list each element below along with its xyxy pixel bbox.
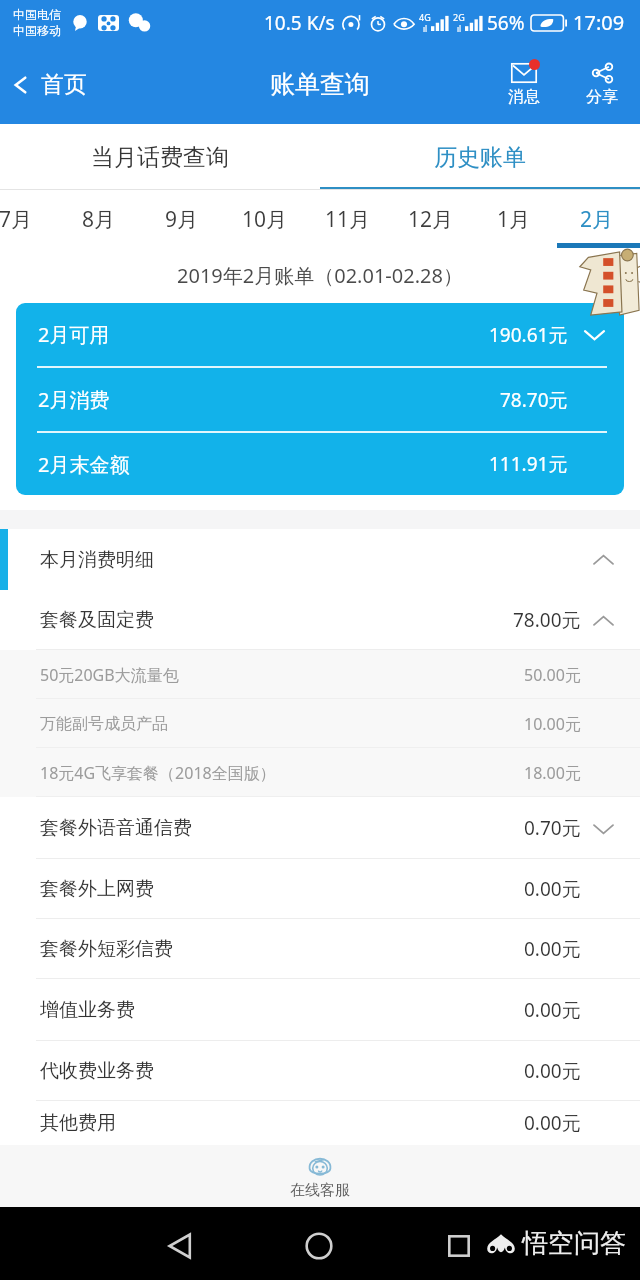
staticText: 套餐外语音通信费 bbox=[40, 816, 192, 840]
staticText: 2月 bbox=[580, 205, 614, 234]
button[interactable]: 增值业务费 bbox=[0, 979, 640, 1041]
button[interactable]: 消息 bbox=[505, 60, 543, 109]
button[interactable]: 历史账单 bbox=[320, 124, 640, 190]
staticText: 0.00元 bbox=[524, 1058, 581, 1084]
button[interactable]: 2月可用 bbox=[16, 303, 624, 366]
staticText: 当月话费查询 bbox=[91, 143, 229, 172]
staticText: 2月消费 bbox=[38, 386, 110, 413]
button[interactable]: 套餐外短彩信费 bbox=[0, 919, 640, 979]
staticText: 10.00元 bbox=[524, 713, 581, 735]
staticText: 2月可用 bbox=[38, 321, 110, 348]
staticText: 2019年2月账单（02.01-02.28） bbox=[177, 262, 463, 289]
staticText: 10月 bbox=[242, 205, 288, 234]
staticText: 2月末金额 bbox=[38, 451, 130, 478]
button[interactable]: 首页 bbox=[0, 62, 97, 107]
staticText: 11月 bbox=[325, 205, 371, 234]
staticText: 在线客服 bbox=[290, 1181, 350, 1200]
staticText: 万能副号成员产品 bbox=[40, 714, 168, 734]
button[interactable]: 万能副号成员产品 bbox=[0, 699, 640, 748]
staticText: 0.00元 bbox=[524, 936, 581, 962]
staticText: 190.61元 bbox=[489, 322, 568, 348]
staticText: 0.00元 bbox=[524, 1110, 581, 1136]
staticText: 4G bbox=[419, 11, 431, 23]
staticText: 账单查询 bbox=[270, 69, 370, 100]
staticText: 78.70元 bbox=[500, 387, 568, 413]
staticText: 0.00元 bbox=[524, 876, 581, 902]
staticText: 中国电信 bbox=[13, 7, 61, 22]
button[interactable]: 本月消费明细 bbox=[0, 529, 640, 590]
staticText: 8月 bbox=[82, 205, 116, 234]
staticText: ıl bbox=[457, 23, 462, 34]
staticText: 套餐外上网费 bbox=[40, 877, 154, 901]
staticText: 本月消费明细 bbox=[40, 548, 154, 572]
button[interactable]: 50元20GB大流量包 bbox=[0, 650, 640, 699]
button[interactable]: Back bbox=[159, 1224, 203, 1268]
button[interactable]: 代收费业务费 bbox=[0, 1041, 640, 1101]
staticText: 50.00元 bbox=[524, 664, 581, 686]
button[interactable]: 套餐外语音通信费 bbox=[0, 797, 640, 859]
staticText: 套餐及固定费 bbox=[40, 608, 154, 632]
staticText: 消息 bbox=[508, 87, 540, 107]
button[interactable]: 18元4G飞享套餐（2018全国版） bbox=[0, 748, 640, 797]
staticText: ıl bbox=[423, 23, 428, 34]
button[interactable]: 在线客服 bbox=[0, 1145, 640, 1207]
staticText: 7月 bbox=[0, 205, 33, 234]
staticText: 套餐外短彩信费 bbox=[40, 937, 173, 961]
staticText: 111.91元 bbox=[489, 451, 568, 477]
button[interactable]: 2月 bbox=[555, 190, 639, 248]
staticText: 1月 bbox=[497, 205, 531, 234]
button[interactable]: 分享 bbox=[584, 60, 620, 109]
button[interactable]: 当月话费查询 bbox=[0, 124, 320, 190]
staticText: 12月 bbox=[408, 205, 454, 234]
staticText: 17:09 bbox=[573, 9, 625, 36]
button[interactable]: 1月 bbox=[472, 190, 556, 248]
button[interactable]: 10月 bbox=[223, 190, 307, 248]
staticText: 10.5 K/s bbox=[264, 10, 335, 36]
staticText: 2G bbox=[453, 11, 465, 23]
staticText: 18元4G飞享套餐（2018全国版） bbox=[40, 762, 276, 784]
button[interactable]: Home bbox=[297, 1224, 341, 1268]
button[interactable]: 11月 bbox=[306, 190, 390, 248]
button[interactable]: 其他费用 bbox=[0, 1101, 640, 1145]
staticText: 50元20GB大流量包 bbox=[40, 664, 179, 686]
button[interactable]: 套餐外上网费 bbox=[0, 859, 640, 919]
button[interactable]: 套餐及固定费 bbox=[0, 590, 640, 650]
staticText: 其他费用 bbox=[40, 1111, 116, 1135]
button[interactable]: 8月 bbox=[57, 190, 141, 248]
staticText: 增值业务费 bbox=[40, 998, 135, 1022]
staticText: 0.70元 bbox=[524, 815, 581, 841]
staticText: 中国移动 bbox=[13, 23, 61, 38]
staticText: 代收费业务费 bbox=[40, 1059, 154, 1083]
staticText: 78.00元 bbox=[513, 607, 581, 633]
staticText: 18.00元 bbox=[524, 762, 581, 784]
staticText: 56% bbox=[487, 10, 525, 36]
button[interactable]: 7月 bbox=[0, 190, 58, 248]
button[interactable]: 2月消费 bbox=[16, 368, 624, 431]
button[interactable]: 2月末金额 bbox=[16, 433, 624, 495]
button[interactable]: 12月 bbox=[389, 190, 473, 248]
button[interactable]: Recents bbox=[437, 1224, 481, 1268]
staticText: 首页 bbox=[41, 70, 87, 99]
staticText: 0.00元 bbox=[524, 997, 581, 1023]
staticText: 分享 bbox=[586, 87, 618, 107]
staticText: 历史账单 bbox=[434, 143, 526, 172]
button[interactable]: 9月 bbox=[140, 190, 224, 248]
staticText: 悟空问答 bbox=[522, 1227, 626, 1260]
staticText: 9月 bbox=[165, 205, 199, 234]
